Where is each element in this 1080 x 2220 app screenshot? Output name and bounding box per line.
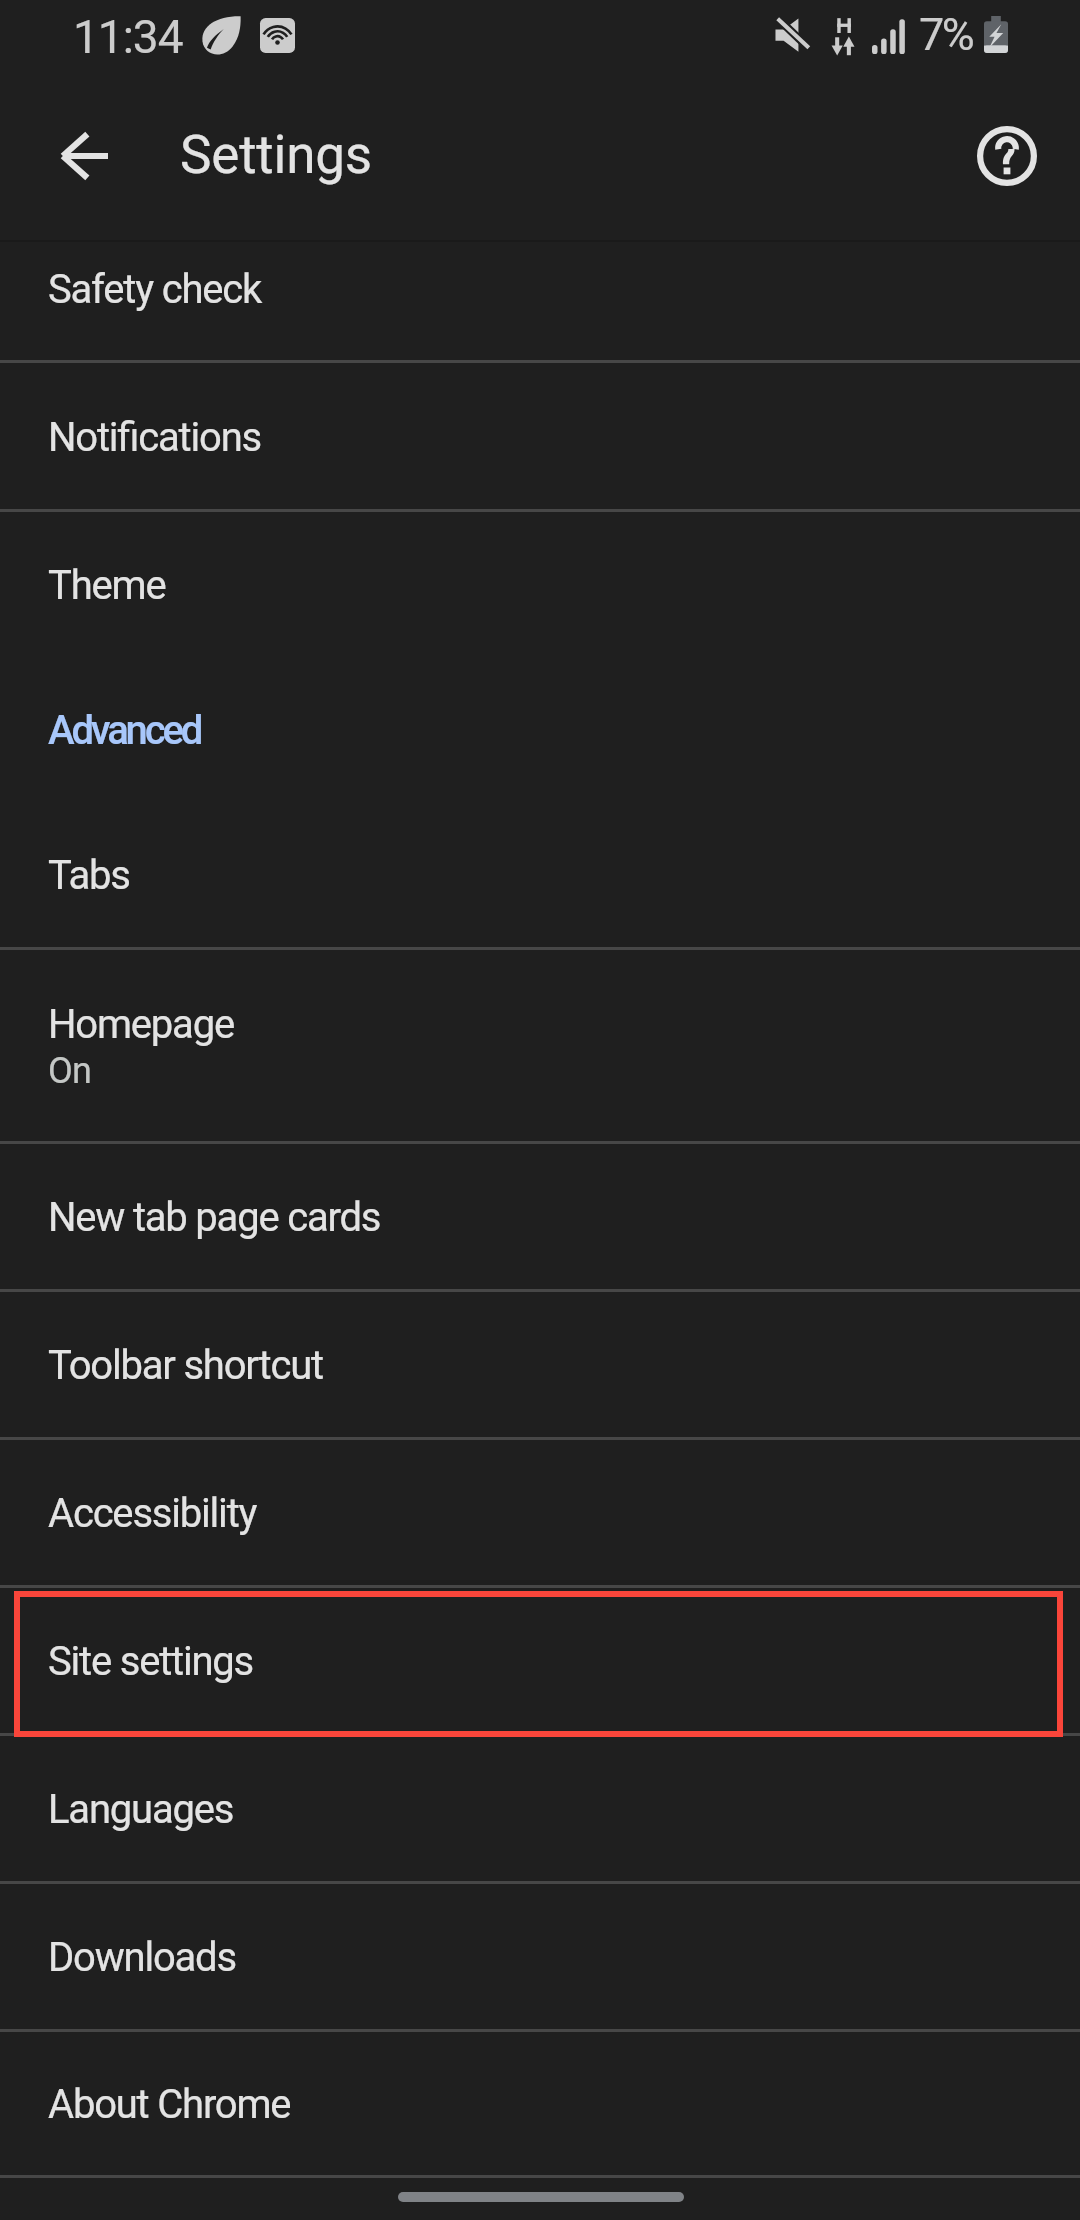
button[interactable]: Accessibility bbox=[0, 1440, 1080, 1585]
button[interactable]: Notifications bbox=[0, 363, 1080, 509]
button[interactable]: Toolbar shortcut bbox=[0, 1292, 1080, 1437]
button[interactable]: New tab page cards bbox=[0, 1144, 1080, 1289]
staticText: Languages bbox=[48, 1786, 234, 1833]
button[interactable]: Site settings bbox=[0, 1588, 1080, 1733]
button[interactable]: Help and feedback bbox=[959, 108, 1055, 204]
staticText: Advanced bbox=[48, 707, 201, 754]
staticText: On bbox=[48, 1050, 92, 1092]
staticText: Safety check bbox=[48, 266, 262, 313]
staticText: 11:34 bbox=[73, 10, 183, 64]
button[interactable]: About Chrome bbox=[0, 2032, 1080, 2175]
staticText: Downloads bbox=[48, 1934, 236, 1981]
staticText: Toolbar shortcut bbox=[48, 1342, 323, 1389]
staticText: Tabs bbox=[48, 852, 130, 899]
button[interactable]: Advanced bbox=[0, 657, 1080, 802]
staticText: Notifications bbox=[48, 414, 261, 461]
staticText: About Chrome bbox=[48, 2081, 291, 2128]
staticText: Settings bbox=[180, 124, 372, 186]
button[interactable]: Homepage bbox=[0, 950, 1080, 1141]
staticText: New tab page cards bbox=[48, 1194, 381, 1241]
button[interactable]: Languages bbox=[0, 1736, 1080, 1881]
button[interactable]: Downloads bbox=[0, 1884, 1080, 2029]
button[interactable]: Back bbox=[36, 108, 132, 204]
staticText: Site settings bbox=[48, 1638, 254, 1685]
staticText: Theme bbox=[48, 562, 166, 609]
staticText: Accessibility bbox=[48, 1490, 257, 1537]
button[interactable]: Safety check bbox=[0, 216, 1080, 360]
button[interactable]: Tabs bbox=[0, 802, 1080, 947]
staticText: Homepage bbox=[48, 1001, 234, 1048]
button[interactable]: Theme bbox=[0, 512, 1080, 657]
staticText: 7% bbox=[919, 8, 973, 61]
